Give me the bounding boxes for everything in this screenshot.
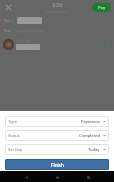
button[interactable]: Cash App bbox=[0, 36, 114, 52]
staticText: Completed bbox=[79, 133, 100, 138]
button[interactable]: Close bbox=[3, 2, 14, 13]
button[interactable]: Status bbox=[5, 130, 109, 141]
button[interactable]: Home bbox=[52, 172, 62, 182]
staticText: Finish bbox=[51, 162, 64, 168]
button[interactable]: Recipient bbox=[17, 17, 42, 24]
staticText: Cash App bbox=[16, 38, 31, 43]
staticText: $20 bbox=[52, 1, 63, 9]
button[interactable]: Set Day bbox=[5, 144, 109, 155]
staticText: Today bbox=[88, 147, 100, 152]
staticText: For: bbox=[4, 28, 12, 33]
staticText: Set Day bbox=[8, 147, 23, 152]
button[interactable]: Pay bbox=[92, 3, 111, 12]
staticText: Status bbox=[8, 133, 20, 138]
staticText: Happy Holidays bbox=[14, 28, 44, 33]
button[interactable]: Back bbox=[21, 172, 31, 182]
staticText: $ bbox=[12, 18, 15, 24]
staticText: To: bbox=[4, 18, 10, 24]
staticText: Type bbox=[8, 119, 17, 124]
button[interactable]: Type bbox=[5, 116, 109, 127]
button[interactable]: Recent apps bbox=[83, 172, 93, 182]
staticText: Payments bbox=[81, 119, 100, 124]
staticText: Pay bbox=[98, 5, 106, 11]
staticText: Cash Balance ▾ bbox=[45, 10, 69, 14]
other: Selected bbox=[105, 42, 110, 47]
button[interactable]: Finish bbox=[5, 159, 109, 170]
